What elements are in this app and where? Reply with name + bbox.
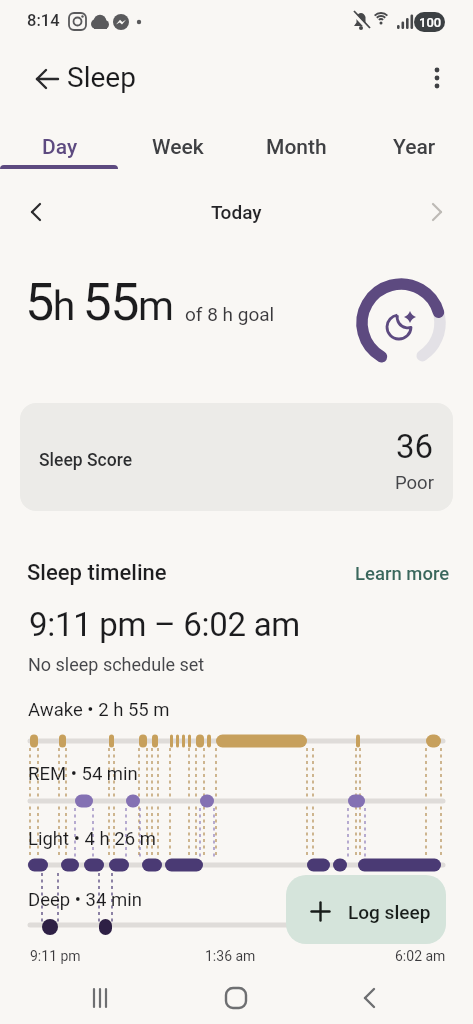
button[interactable] <box>348 980 388 1016</box>
staticText: Light • 4 h 26 m <box>28 828 156 850</box>
button[interactable] <box>216 980 256 1016</box>
button[interactable]: Sleep Score <box>20 403 453 511</box>
staticText: Week <box>152 135 204 160</box>
staticText: Year <box>393 135 436 160</box>
staticText: 9:11 pm <box>30 948 81 964</box>
button[interactable] <box>421 60 457 96</box>
staticText: Today <box>211 201 262 223</box>
button[interactable]: Week <box>119 126 237 168</box>
staticText: 5h 55m <box>25 272 173 333</box>
staticText: Month <box>266 135 327 160</box>
staticText: Sleep timeline <box>27 560 167 586</box>
staticText: Day <box>42 135 78 160</box>
button[interactable]: Learn more <box>349 557 456 591</box>
button[interactable]: Day <box>0 126 119 168</box>
staticText: 1:36 am <box>205 948 256 964</box>
staticText: Awake • 2 h 55 m <box>28 699 170 721</box>
button[interactable] <box>24 58 64 98</box>
button[interactable]: Log sleep <box>286 875 446 944</box>
staticText: Learn more <box>355 563 450 585</box>
staticText: 100 <box>419 15 442 30</box>
staticText: REM • 54 min <box>28 763 138 785</box>
button[interactable] <box>429 190 473 234</box>
staticText: No sleep schedule set <box>28 654 205 675</box>
button[interactable]: Year <box>355 126 473 168</box>
staticText: 9:11 pm – 6:02 am <box>29 605 300 644</box>
staticText: 6:02 am <box>395 948 446 964</box>
staticText: Sleep Score <box>39 450 133 471</box>
staticText: Sleep <box>67 61 136 94</box>
button[interactable]: Month <box>237 126 355 168</box>
staticText: Log sleep <box>348 901 431 923</box>
staticText: of 8 h goal <box>185 303 275 325</box>
staticText: Poor <box>395 472 434 494</box>
staticText: 36 <box>396 427 434 466</box>
staticText: 8:14 <box>27 11 60 30</box>
staticText: Deep • 34 min <box>28 889 142 911</box>
button[interactable] <box>80 980 120 1016</box>
button[interactable] <box>0 190 44 234</box>
